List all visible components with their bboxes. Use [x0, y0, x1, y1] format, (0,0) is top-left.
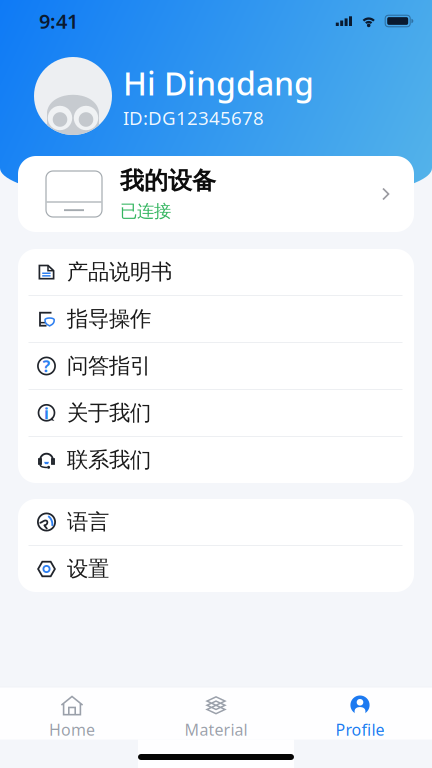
- button[interactable]: 产品说明书: [18, 249, 414, 296]
- button[interactable]: Home: [0, 692, 144, 742]
- button[interactable]: 指导操作: [18, 296, 414, 343]
- button[interactable]: Material: [144, 692, 288, 742]
- staticText: ?: [42, 355, 50, 377]
- button[interactable]: ?: [18, 343, 414, 390]
- staticText: 问答指引: [67, 353, 151, 379]
- staticText: 关于我们: [67, 400, 151, 426]
- staticText: Profile: [335, 719, 384, 740]
- staticText: 9:41: [39, 8, 78, 34]
- staticText: 指导操作: [67, 306, 151, 332]
- button[interactable]: 联系我们: [18, 437, 414, 483]
- staticText: 联系我们: [67, 447, 151, 473]
- button[interactable]: Profile: [288, 692, 432, 742]
- staticText: ID:DG12345678: [123, 105, 264, 130]
- staticText: 产品说明书: [67, 259, 172, 285]
- button[interactable]: 设置: [18, 546, 414, 592]
- staticText: 已连接: [120, 201, 171, 222]
- staticText: 我的设备: [120, 166, 216, 196]
- button[interactable]: 语言: [18, 499, 414, 546]
- button[interactable]: 我的设备: [18, 156, 414, 232]
- button[interactable]: i: [18, 390, 414, 437]
- staticText: i: [44, 402, 49, 424]
- staticText: Home: [49, 719, 95, 740]
- staticText: Material: [184, 719, 247, 740]
- staticText: 语言: [67, 509, 109, 535]
- staticText: Hi Dingdang: [123, 62, 314, 104]
- staticText: 设置: [67, 556, 109, 582]
